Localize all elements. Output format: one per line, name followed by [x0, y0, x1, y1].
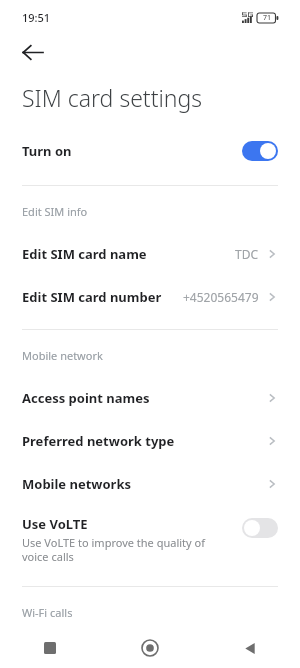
button[interactable]: Make calls using Wi-Fi	[0, 632, 300, 668]
button[interactable]: Use VoLTE	[0, 505, 300, 564]
button[interactable]: Edit SIM card name	[0, 233, 300, 275]
staticText: Turn on	[22, 142, 242, 160]
button[interactable]: Turn on	[0, 131, 300, 171]
staticText: TDC	[235, 246, 259, 262]
button[interactable]	[242, 518, 278, 538]
staticText: 71	[263, 13, 272, 23]
staticText: Mobile networks	[22, 475, 266, 493]
staticText: SIM card settings	[22, 82, 203, 113]
button[interactable]: Access point names	[0, 377, 300, 419]
staticText: Edit SIM info	[22, 204, 88, 219]
staticText: +4520565479	[183, 289, 259, 305]
staticText: Edit SIM card name	[22, 245, 235, 263]
staticText: Mobile network	[22, 348, 103, 363]
staticText: 19:51	[22, 10, 51, 25]
staticText: Use Wi-Fi to improve the quality of voic…	[22, 653, 234, 668]
staticText: Wi-Fi calls	[22, 605, 73, 620]
staticText: Access point names	[22, 389, 266, 407]
button[interactable]: Back	[14, 34, 50, 70]
staticText: Edit SIM card number	[22, 288, 183, 306]
staticText: Make calls using Wi-Fi	[22, 632, 164, 650]
button[interactable]: Recents	[0, 628, 100, 668]
button[interactable]	[242, 635, 278, 655]
button[interactable]: Home	[100, 628, 200, 668]
button[interactable]: Back	[200, 628, 300, 668]
button[interactable]: Mobile networks	[0, 463, 300, 505]
button[interactable]: Edit SIM card number	[0, 276, 300, 318]
button[interactable]: Preferred network type	[0, 420, 300, 462]
staticText: Use VoLTE to improve the quality of voic…	[22, 535, 219, 564]
staticText: Preferred network type	[22, 432, 266, 450]
staticText: Use VoLTE	[22, 515, 88, 533]
button[interactable]	[242, 141, 278, 161]
